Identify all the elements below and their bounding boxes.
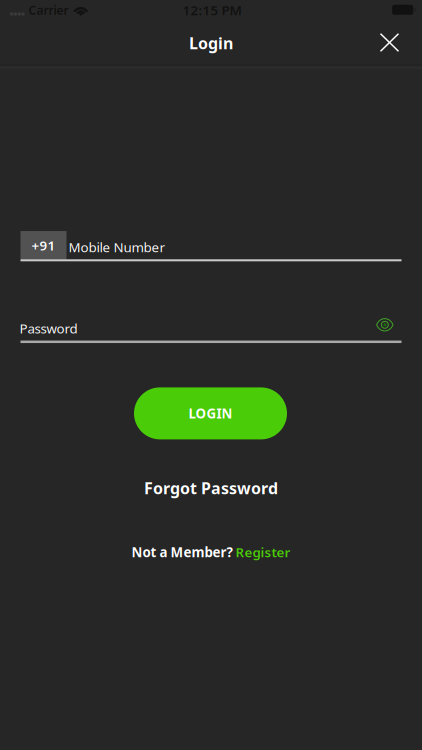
- staticText: Not a Member?: [131, 543, 232, 561]
- button[interactable]: LOGIN: [134, 387, 287, 439]
- staticText: Carrier: [29, 2, 69, 18]
- button[interactable]: Country code +91: [20, 231, 66, 260]
- button[interactable]: Close: [367, 20, 411, 64]
- staticText: Mobile Number: [68, 238, 165, 256]
- button[interactable]: Forgot Password: [111, 473, 311, 503]
- textField[interactable]: Mobile Number: [68, 238, 165, 256]
- staticText: +91: [31, 236, 55, 254]
- staticText: 12:15 PM: [182, 1, 241, 19]
- staticText: LOGIN: [188, 404, 232, 422]
- button[interactable]: Show password: [365, 310, 405, 340]
- staticText: Register: [235, 543, 290, 561]
- staticText: Forgot Password: [144, 477, 278, 499]
- staticText: Password: [19, 319, 77, 337]
- secureTextField[interactable]: Password: [19, 319, 77, 337]
- staticText: Login: [189, 32, 233, 54]
- button[interactable]: Not a Member?: [111, 539, 311, 565]
